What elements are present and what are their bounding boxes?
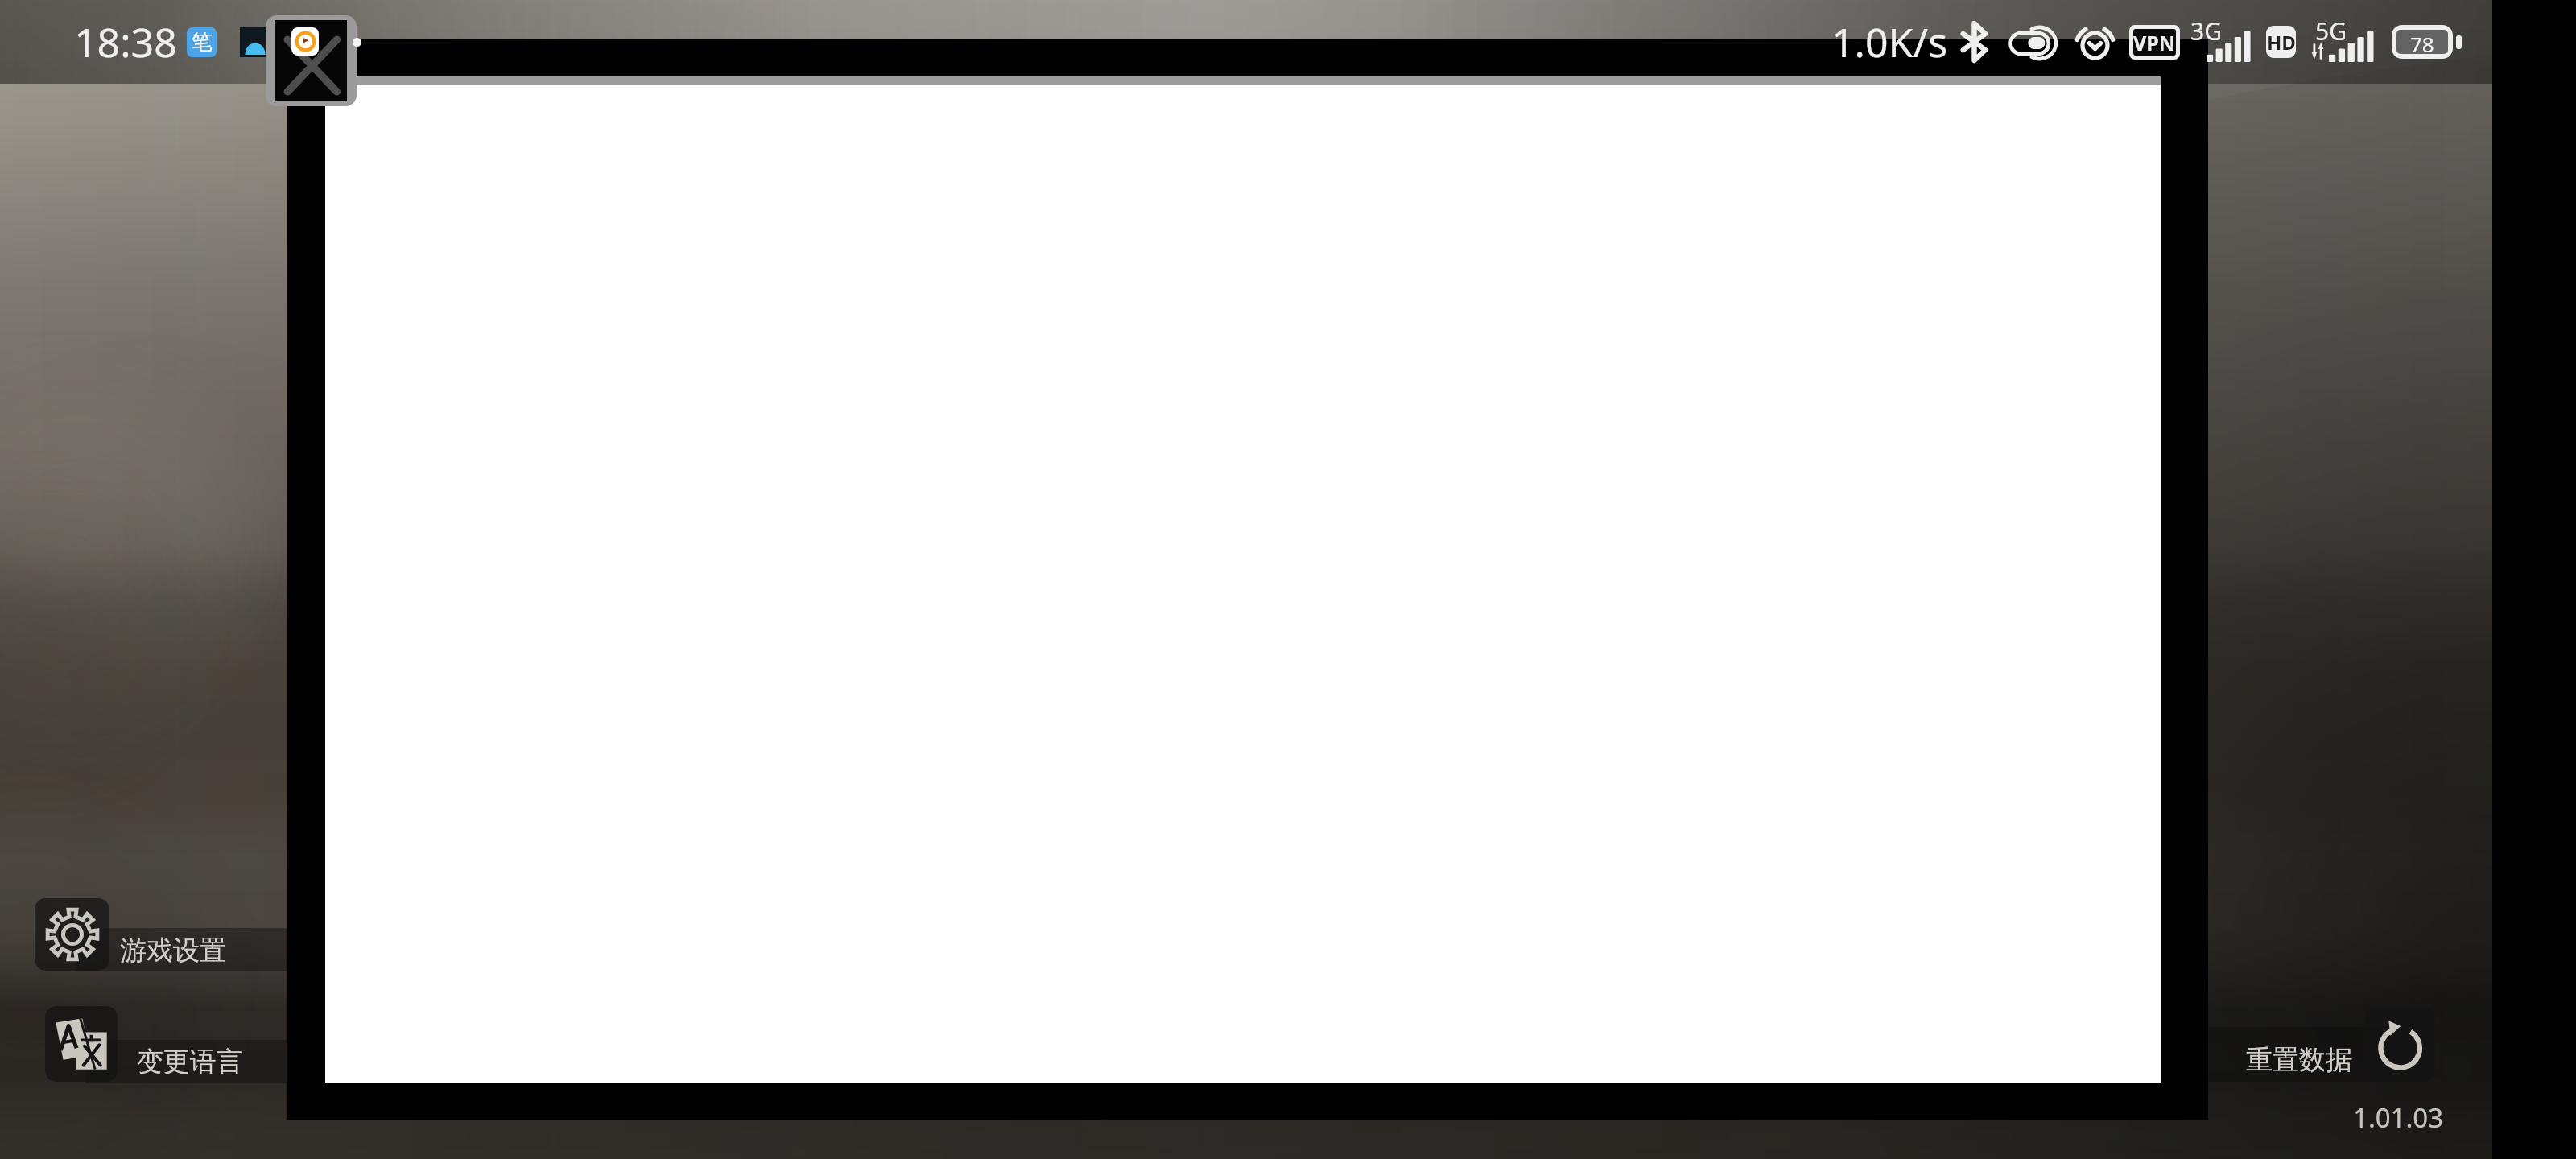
staticText: HD	[2267, 29, 2296, 56]
staticText: 重置数据	[2246, 1043, 2352, 1077]
staticText: 1.0K/s	[1831, 14, 1948, 69]
staticText: VPN	[2133, 29, 2176, 56]
staticText: 5G	[2315, 14, 2347, 47]
button[interactable]: Floating window	[266, 15, 357, 106]
button[interactable]: 变更语言	[45, 1006, 287, 1082]
staticText: 变更语言	[137, 1045, 243, 1079]
staticText: 78	[2410, 30, 2434, 54]
staticText: 3G	[2190, 14, 2222, 47]
button[interactable]: Web content	[325, 85, 2161, 1083]
staticText: 游戏设置	[120, 934, 226, 967]
staticText: 1.01.03	[2353, 1099, 2444, 1136]
staticText: 笔	[192, 29, 213, 56]
button[interactable]: 重置数据	[2205, 1008, 2435, 1082]
staticText: 18:38	[74, 14, 177, 69]
button[interactable]: 游戏设置	[35, 898, 287, 971]
